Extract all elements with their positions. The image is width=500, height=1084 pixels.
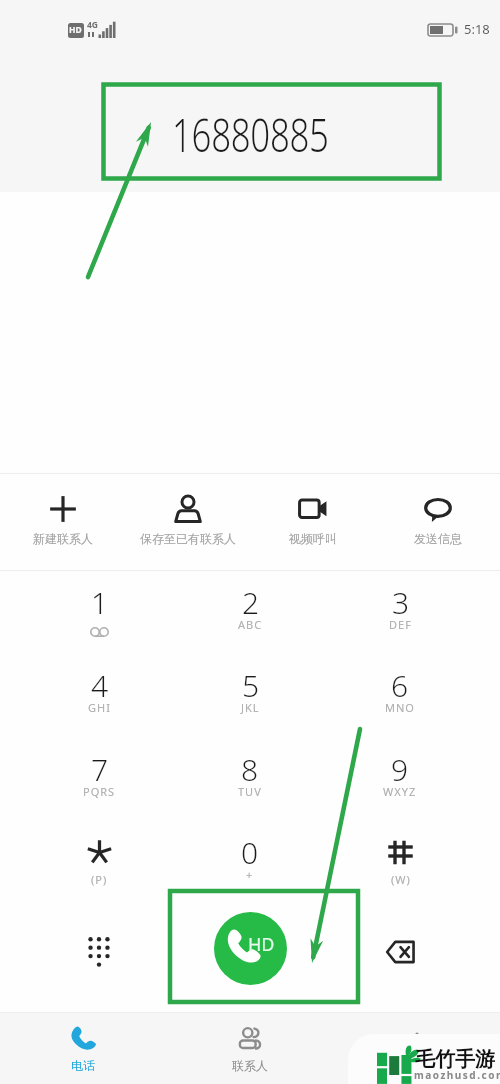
button[interactable]: 3 [344,582,456,660]
staticText: (P) [91,872,108,887]
button[interactable]: 6 [344,665,456,743]
staticText: 2 [242,582,260,623]
staticText: MNO [385,700,415,715]
staticText: 毛竹手游 [415,1047,495,1072]
button[interactable]: Call [214,912,287,985]
staticText: HD [69,24,82,36]
button[interactable]: 新建联系人 [0,474,125,570]
staticText: 视频呼叫 [289,531,337,546]
staticText: ABC [238,617,263,632]
staticText: PQRS [83,784,116,799]
button[interactable]: Hide keypad [70,921,128,979]
staticText: 3 [392,582,410,623]
staticText: 0 [241,832,259,873]
staticText: 4 [91,665,109,706]
button[interactable]: 联系人 [166,1013,333,1084]
staticText: 16880885 [172,104,329,152]
button[interactable]: 收藏 [333,1013,500,1084]
staticText: 发送信息 [414,531,462,546]
staticText: HD [248,932,275,957]
button[interactable]: (W) [344,832,456,910]
staticText: + [246,867,254,882]
staticText: WXYZ [383,784,417,799]
staticText: 5 [242,665,260,706]
button[interactable]: 4 [43,665,155,743]
button[interactable]: 发送信息 [375,474,500,570]
staticText: 联系人 [232,1058,268,1073]
staticText: GHI [88,700,111,715]
staticText: 7 [91,749,109,790]
button[interactable]: 5 [194,665,306,743]
staticText: TUV [238,784,262,799]
button[interactable]: 7 [43,749,155,827]
staticText: 9 [391,749,409,790]
staticText: maozhusd.com [414,1068,500,1082]
button[interactable]: Backspace [371,923,429,981]
button[interactable]: 9 [344,749,456,827]
staticText: 4G [87,19,99,31]
staticText: 新建联系人 [33,531,93,546]
button[interactable]: 视频呼叫 [250,474,375,570]
button[interactable]: 1 [43,582,155,660]
staticText: 8 [241,749,259,790]
button[interactable]: 0 [194,832,306,910]
staticText: (W) [391,872,411,887]
staticText: 收藏 [405,1058,429,1073]
staticText: 保存至已有联系人 [140,531,236,546]
button[interactable]: 8 [194,749,306,827]
button[interactable]: 保存至已有联系人 [125,474,250,570]
staticText: DEF [389,617,412,632]
button[interactable]: (P) [43,832,155,910]
staticText: 5:18 [464,20,490,38]
staticText: JKL [241,700,260,715]
staticText: 1 [91,582,109,623]
button[interactable]: 2 [194,582,306,660]
staticText: 电话 [71,1058,95,1073]
button[interactable]: 电话 [0,1013,166,1084]
staticText: 6 [391,665,409,706]
